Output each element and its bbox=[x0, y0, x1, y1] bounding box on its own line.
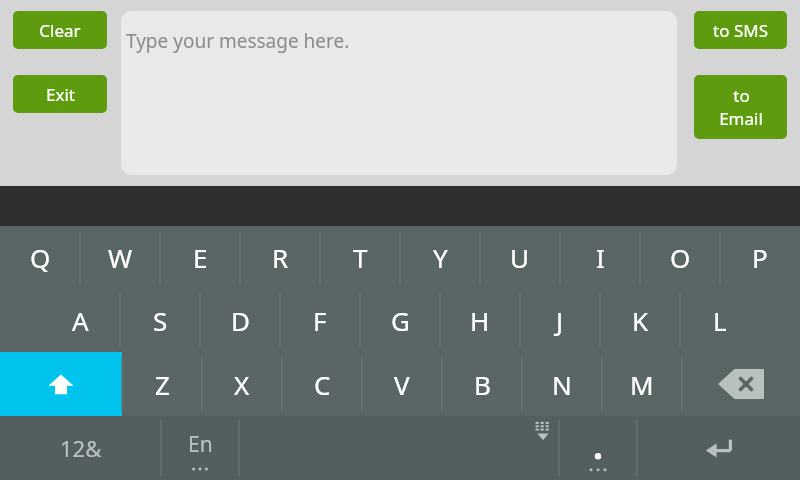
staticText: Exit bbox=[46, 83, 75, 106]
button[interactable]: Y bbox=[400, 226, 480, 289]
button[interactable]: M bbox=[602, 352, 682, 416]
button[interactable]: W bbox=[80, 226, 160, 289]
button[interactable]: Type your message here. bbox=[121, 11, 677, 175]
button[interactable]: A bbox=[40, 289, 120, 352]
staticText: R bbox=[272, 240, 289, 275]
staticText: Y bbox=[433, 240, 448, 275]
staticText: U bbox=[510, 240, 530, 275]
button[interactable]: C bbox=[282, 352, 362, 416]
button[interactable] bbox=[559, 416, 637, 480]
staticText: to SMS bbox=[713, 19, 768, 42]
button[interactable]: F bbox=[280, 289, 360, 352]
button[interactable]: Enter bbox=[637, 416, 800, 480]
button[interactable]: Space bbox=[239, 416, 559, 480]
button[interactable]: K bbox=[600, 289, 680, 352]
staticText: L bbox=[713, 303, 727, 338]
button[interactable]: G bbox=[360, 289, 440, 352]
staticText: Email bbox=[719, 107, 763, 130]
button[interactable]: to SMS bbox=[694, 11, 787, 49]
button[interactable]: E bbox=[160, 226, 240, 289]
staticText: 12& bbox=[60, 433, 102, 463]
button[interactable]: I bbox=[560, 226, 640, 289]
staticText: J bbox=[556, 303, 564, 338]
staticText: Clear bbox=[39, 19, 81, 42]
button[interactable]: T bbox=[320, 226, 400, 289]
staticText: F bbox=[313, 303, 327, 338]
button[interactable]: U bbox=[480, 226, 560, 289]
staticText: E bbox=[193, 240, 208, 275]
staticText: P bbox=[752, 240, 768, 275]
staticText: Z bbox=[155, 367, 170, 402]
staticText: S bbox=[153, 303, 168, 338]
staticText: B bbox=[474, 367, 491, 402]
button[interactable]: P bbox=[720, 226, 800, 289]
staticText: N bbox=[552, 367, 572, 402]
staticText: H bbox=[470, 303, 490, 338]
staticText: to bbox=[733, 84, 750, 107]
staticText: O bbox=[670, 240, 691, 275]
button[interactable]: V bbox=[362, 352, 442, 416]
button[interactable]: Exit bbox=[13, 75, 107, 113]
button[interactable]: N bbox=[522, 352, 602, 416]
button[interactable]: B bbox=[442, 352, 522, 416]
staticText: K bbox=[632, 303, 649, 338]
staticText: A bbox=[72, 303, 89, 338]
staticText: T bbox=[353, 240, 368, 275]
button[interactable]: Clear bbox=[13, 11, 107, 49]
button[interactable]: Z bbox=[122, 352, 202, 416]
button[interactable]: Q bbox=[0, 226, 80, 289]
button[interactable]: Shift bbox=[0, 352, 122, 416]
staticText: En bbox=[188, 430, 213, 459]
staticText: Type your message here. bbox=[126, 28, 350, 54]
button[interactable]: D bbox=[200, 289, 280, 352]
button[interactable]: H bbox=[440, 289, 520, 352]
button[interactable]: En bbox=[161, 416, 239, 480]
staticText: G bbox=[391, 303, 410, 338]
staticText: I bbox=[596, 240, 605, 275]
button[interactable]: O bbox=[640, 226, 720, 289]
staticText: X bbox=[234, 367, 250, 402]
button[interactable]: to bbox=[694, 75, 787, 139]
staticText: V bbox=[394, 367, 410, 402]
button[interactable]: R bbox=[240, 226, 320, 289]
button[interactable]: J bbox=[520, 289, 600, 352]
button[interactable]: X bbox=[202, 352, 282, 416]
staticText: D bbox=[231, 303, 250, 338]
staticText: C bbox=[314, 367, 331, 402]
staticText: Q bbox=[30, 240, 51, 275]
staticText: W bbox=[108, 240, 133, 275]
button[interactable]: S bbox=[120, 289, 200, 352]
staticText: M bbox=[630, 367, 654, 402]
button[interactable]: 12& bbox=[0, 416, 161, 480]
button[interactable]: Backspace bbox=[682, 352, 800, 416]
button[interactable]: L bbox=[680, 289, 760, 352]
